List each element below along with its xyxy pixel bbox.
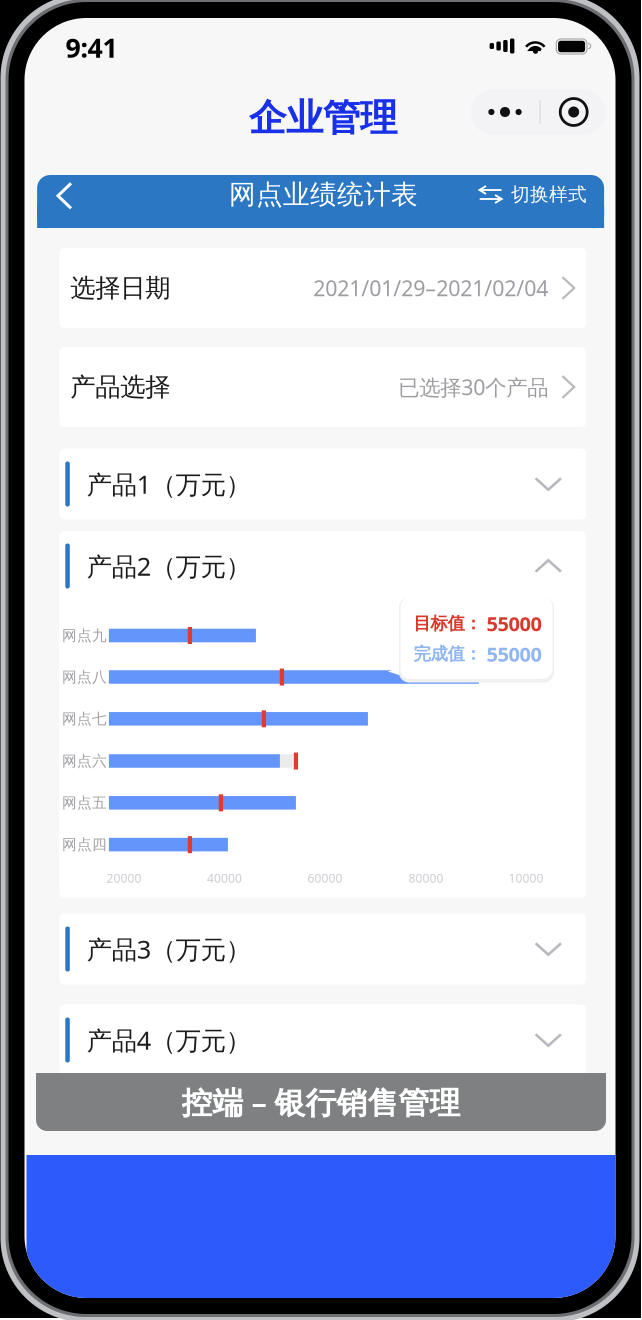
button[interactable]: 产品3（万元） (59, 913, 586, 984)
staticText: 企业管理 (249, 95, 397, 141)
staticText: 目标值： (413, 613, 481, 634)
staticText: 20000 (106, 870, 141, 886)
staticText: 网点九 (62, 626, 107, 644)
button[interactable]: Close mini program (541, 89, 606, 134)
staticText: 网点六 (62, 752, 107, 770)
button[interactable]: 选择日期 (59, 248, 586, 328)
staticText: 9:41 (65, 30, 117, 65)
staticText: 产品2（万元） (87, 549, 251, 583)
staticText: 40000 (207, 870, 242, 886)
button[interactable]: 产品2（万元） (59, 530, 586, 601)
staticText: 2021/01/29–2021/02/04 (313, 274, 548, 302)
staticText: 产品选择 (70, 371, 170, 402)
staticText: 产品4（万元） (87, 1023, 251, 1057)
staticText: 55000 (486, 641, 541, 667)
staticText: 55000 (486, 610, 541, 637)
staticText: 完成值： (413, 643, 481, 665)
staticText: 选择日期 (70, 272, 170, 303)
staticText: 控端 – 银行销售管理 (181, 1082, 460, 1122)
staticText: 已选择30个产品 (398, 373, 548, 401)
button[interactable]: 控端 – 银行销售管理 (36, 1073, 606, 1131)
staticText: 10000 (508, 870, 543, 886)
button[interactable]: 产品选择 (59, 347, 586, 427)
staticText: 产品3（万元） (87, 932, 251, 966)
staticText: 产品1（万元） (87, 467, 251, 501)
staticText: 网点五 (62, 794, 107, 812)
button[interactable]: More options (470, 89, 539, 134)
staticText: 网点七 (62, 710, 107, 728)
staticText: 切换样式 (511, 183, 587, 206)
staticText: 网点四 (62, 836, 107, 854)
button[interactable]: 网点业绩统计表 (37, 175, 604, 228)
staticText: 80000 (408, 870, 443, 886)
button[interactable]: 产品4（万元） (59, 1004, 586, 1075)
staticText: 网点八 (62, 668, 107, 686)
button[interactable]: 产品1（万元） (59, 448, 586, 519)
staticText: 60000 (307, 870, 342, 886)
staticText: 网点业绩统计表 (229, 178, 418, 211)
